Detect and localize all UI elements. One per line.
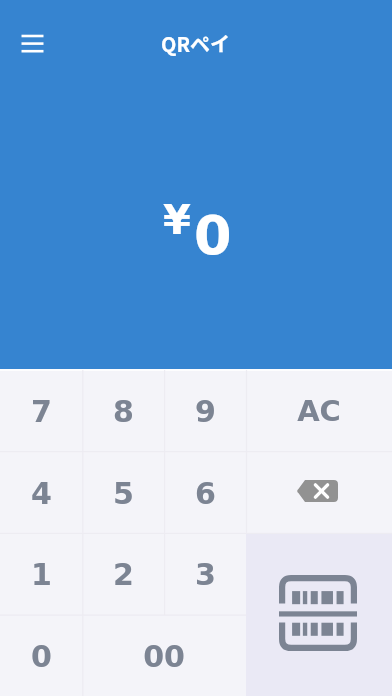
button[interactable]: Scan barcode [246, 533, 392, 696]
button[interactable]: 00 [82, 615, 246, 696]
button[interactable]: AC [246, 370, 392, 452]
staticText: AC [297, 394, 341, 428]
button[interactable]: Backspace [246, 452, 392, 534]
button[interactable]: 4 [0, 452, 82, 534]
staticText: 5 [113, 476, 134, 511]
staticText: 0 [194, 204, 232, 267]
staticText: 6 [195, 476, 216, 511]
staticText: 1 [31, 557, 52, 592]
button[interactable]: 1 [0, 533, 82, 615]
button[interactable]: 9 [164, 370, 246, 452]
staticText: 00 [143, 639, 185, 674]
button[interactable]: Menu [10, 21, 54, 65]
button[interactable]: 0 [0, 615, 82, 696]
staticText: 8 [113, 394, 134, 429]
staticText: 9 [195, 394, 216, 429]
staticText: 7 [31, 394, 52, 429]
staticText: 4 [31, 476, 52, 511]
staticText: 2 [113, 557, 134, 592]
button[interactable]: 7 [0, 370, 82, 452]
button[interactable]: 6 [164, 452, 246, 534]
button[interactable]: 5 [82, 452, 164, 534]
staticText: QRペイ [161, 29, 231, 58]
button[interactable]: 2 [82, 533, 164, 615]
button[interactable]: 3 [164, 533, 246, 615]
staticText: ¥ [163, 197, 191, 244]
button[interactable]: 8 [82, 370, 164, 452]
staticText: 0 [31, 639, 52, 674]
staticText: 3 [195, 557, 216, 592]
